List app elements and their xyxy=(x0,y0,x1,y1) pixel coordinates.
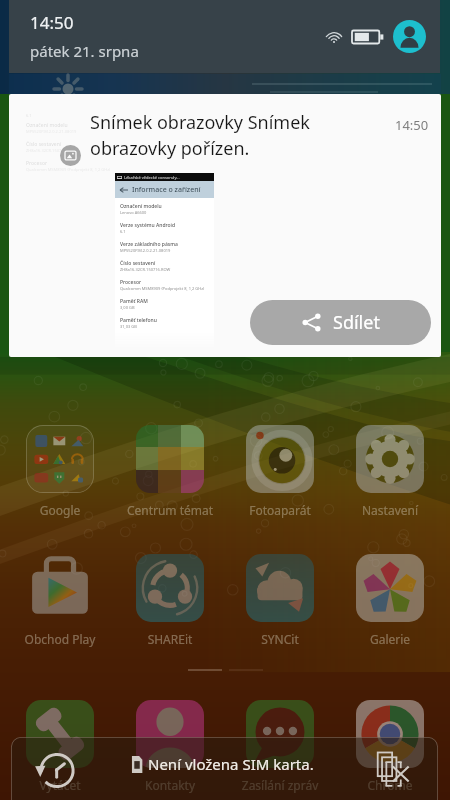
staticText: pátek 21. srpna xyxy=(30,41,139,61)
button[interactable]: Recent apps xyxy=(35,753,75,788)
staticText: Procesor xyxy=(120,279,142,286)
staticText: 31,03 GB xyxy=(120,324,137,329)
staticText: MP5520P.M.2.0.2.21-08019 xyxy=(120,248,171,253)
staticText: Procesor xyxy=(26,160,48,167)
staticText: ZH8a16.32CR.150716.ROW xyxy=(26,148,77,153)
button[interactable]: Google xyxy=(8,425,112,518)
button[interactable]: SHAREit xyxy=(118,554,222,647)
staticText: Paměť telefonu xyxy=(120,317,157,324)
staticText: Paměť RAM xyxy=(120,298,148,305)
staticText: 14:50 xyxy=(30,11,74,34)
staticText: ZH8a16.32CR.150716.ROW xyxy=(120,267,171,272)
button[interactable]: Galerie xyxy=(338,554,442,647)
staticText: Chrome xyxy=(338,777,442,793)
staticText: 6.1 xyxy=(26,113,32,118)
staticText: Centrum témat xyxy=(118,502,222,518)
staticText: Kontakty xyxy=(118,777,222,793)
staticText: Sdílet xyxy=(333,310,380,335)
button[interactable]: User account xyxy=(393,20,426,53)
button[interactable]: SYNCit xyxy=(228,554,332,647)
button[interactable]: Nastavení xyxy=(338,425,442,518)
staticText: Obchod Play xyxy=(8,631,112,647)
staticText: 3,00 GB xyxy=(120,305,135,310)
button[interactable]: 6.1 xyxy=(9,94,441,357)
staticText: 14:50 xyxy=(395,116,429,134)
staticText: Galerie xyxy=(338,631,442,647)
staticText: 6.1 xyxy=(120,229,126,234)
staticText: Vytáčet xyxy=(8,777,112,793)
staticText: Označení modelu xyxy=(26,122,68,129)
staticText: Lenovo A6600 xyxy=(120,210,147,215)
button[interactable]: Zasílání zpráv xyxy=(228,700,332,793)
button[interactable]: Obchod Play xyxy=(8,554,112,647)
button[interactable]: Clear all xyxy=(377,751,413,788)
button[interactable]: Fotoaparát xyxy=(228,425,332,518)
staticText: Označení modelu xyxy=(120,203,162,210)
staticText: MP5520P.M.2.0.2.21-08019 xyxy=(26,129,77,134)
staticText: Informace o zařízení xyxy=(132,185,201,195)
staticText: Číslo sestavení xyxy=(26,141,62,148)
staticText: Zasílání zpráv xyxy=(228,777,332,793)
button[interactable]: Sdílet xyxy=(250,300,431,345)
staticText: SYNCit xyxy=(228,631,332,647)
staticText: SHAREit xyxy=(118,631,222,647)
staticText: Nastavení xyxy=(338,502,442,518)
staticText: Lékařské vědecké consoruly... xyxy=(124,175,180,180)
button[interactable]: Kontakty xyxy=(118,700,222,793)
staticText: Snímek obrazovky Snímek obrazovky poříze… xyxy=(90,110,350,160)
staticText: Číslo sestavení xyxy=(120,260,156,267)
button[interactable]: Chrome xyxy=(338,700,442,793)
staticText: Verze základního pásma xyxy=(120,241,178,248)
staticText: Fotoaparát xyxy=(228,502,332,518)
button[interactable]: Centrum témat xyxy=(118,425,222,518)
button[interactable]: Vytáčet xyxy=(8,700,112,793)
staticText: Verze systému Android xyxy=(120,222,176,229)
staticText: Qualcomm MSM8909 (Podprojekt 8, 1,2 GHz) xyxy=(120,286,205,291)
staticText: Qualcomm MSM8909 (Podprojekt 8, 1,2 GHz) xyxy=(26,167,111,172)
staticText: Není vložena SIM karta. xyxy=(148,754,314,774)
staticText: Google xyxy=(8,502,112,518)
